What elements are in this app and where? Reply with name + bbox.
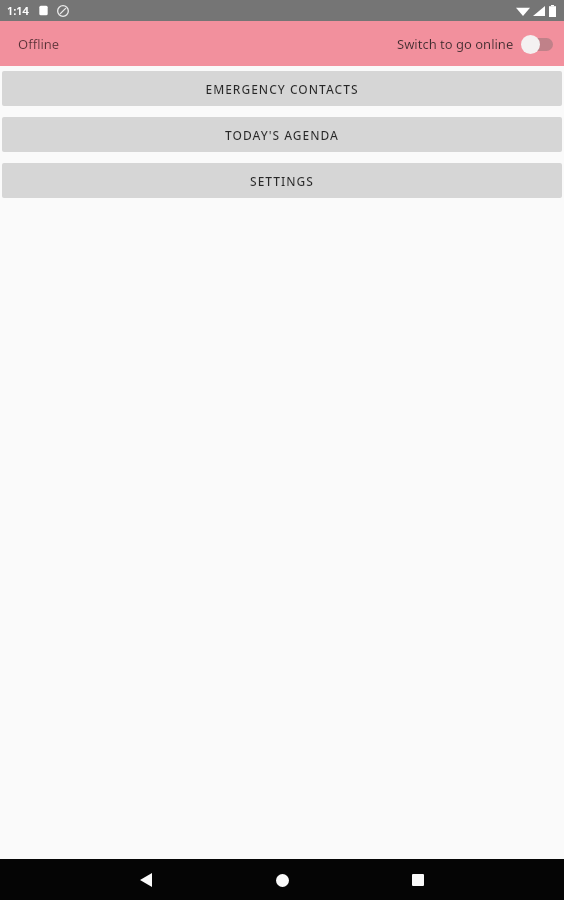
staticText: SETTINGS [250,173,314,189]
staticText: Switch to go online [397,35,514,53]
staticText: 1:14 [7,3,29,18]
button[interactable]: EMERGENCY CONTACTS [2,71,562,106]
other: Switch to go online [520,33,556,55]
button[interactable]: SETTINGS [2,163,562,198]
button[interactable]: TODAY'S AGENDA [2,117,562,152]
button[interactable]: Back [126,860,166,900]
staticText: TODAY'S AGENDA [225,127,339,143]
button[interactable]: Recent apps [398,860,438,900]
button[interactable]: Switch to go online [397,33,556,55]
staticText: EMERGENCY CONTACTS [205,81,359,97]
staticText: Offline [18,35,60,53]
button[interactable]: Home [262,860,302,900]
